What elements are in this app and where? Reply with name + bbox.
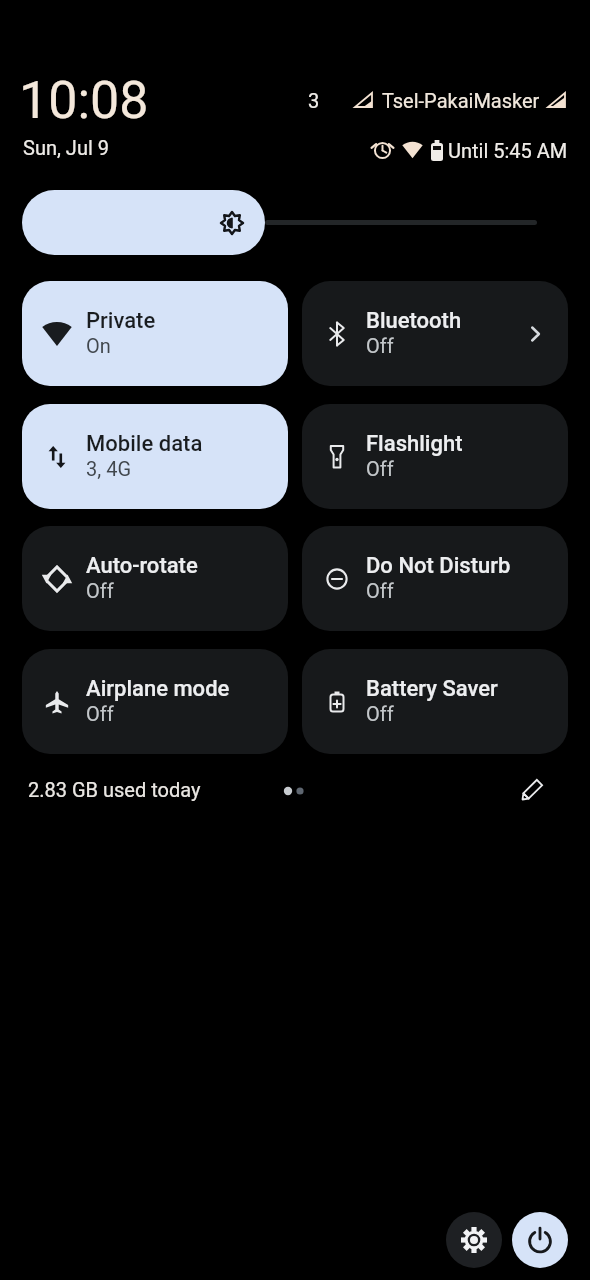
button[interactable]	[512, 1212, 568, 1268]
staticText: Do Not Disturb	[366, 553, 511, 579]
button[interactable]: Do Not Disturb	[302, 526, 568, 631]
staticText: 10:08	[19, 70, 149, 131]
button[interactable]	[22, 190, 265, 255]
staticText: Off	[366, 579, 394, 602]
staticText: Airplane mode	[86, 676, 230, 702]
staticText: Until 5:45 AM	[448, 139, 568, 162]
button[interactable]: Mobile data	[22, 404, 288, 509]
staticText: 2.83 GB used today	[28, 778, 201, 801]
staticText: 3	[308, 89, 320, 112]
staticText: Private	[86, 308, 156, 334]
staticText: Tsel-PakaiMasker	[382, 89, 540, 112]
staticText: Sun, Jul 9	[23, 136, 109, 159]
staticText: Flashlight	[366, 431, 463, 457]
staticText: Off	[86, 579, 114, 602]
button[interactable]: Bluetooth	[302, 281, 568, 386]
button[interactable]	[446, 1212, 502, 1268]
staticText: Off	[366, 334, 394, 357]
button[interactable]: Auto-rotate	[22, 526, 288, 631]
staticText: Off	[86, 702, 114, 725]
button[interactable]: Flashlight	[302, 404, 568, 509]
staticText: 3, 4G	[86, 457, 131, 480]
staticText: Bluetooth	[366, 308, 462, 334]
button[interactable]	[512, 772, 550, 810]
button[interactable]: Airplane mode	[22, 649, 288, 754]
staticText: Off	[366, 457, 394, 480]
button[interactable]: Battery Saver	[302, 649, 568, 754]
staticText: On	[86, 334, 111, 357]
staticText: Mobile data	[86, 431, 203, 457]
staticText: Battery Saver	[366, 676, 498, 702]
staticText: Auto-rotate	[86, 553, 198, 579]
button[interactable]: Private	[22, 281, 288, 386]
staticText: Off	[366, 702, 394, 725]
